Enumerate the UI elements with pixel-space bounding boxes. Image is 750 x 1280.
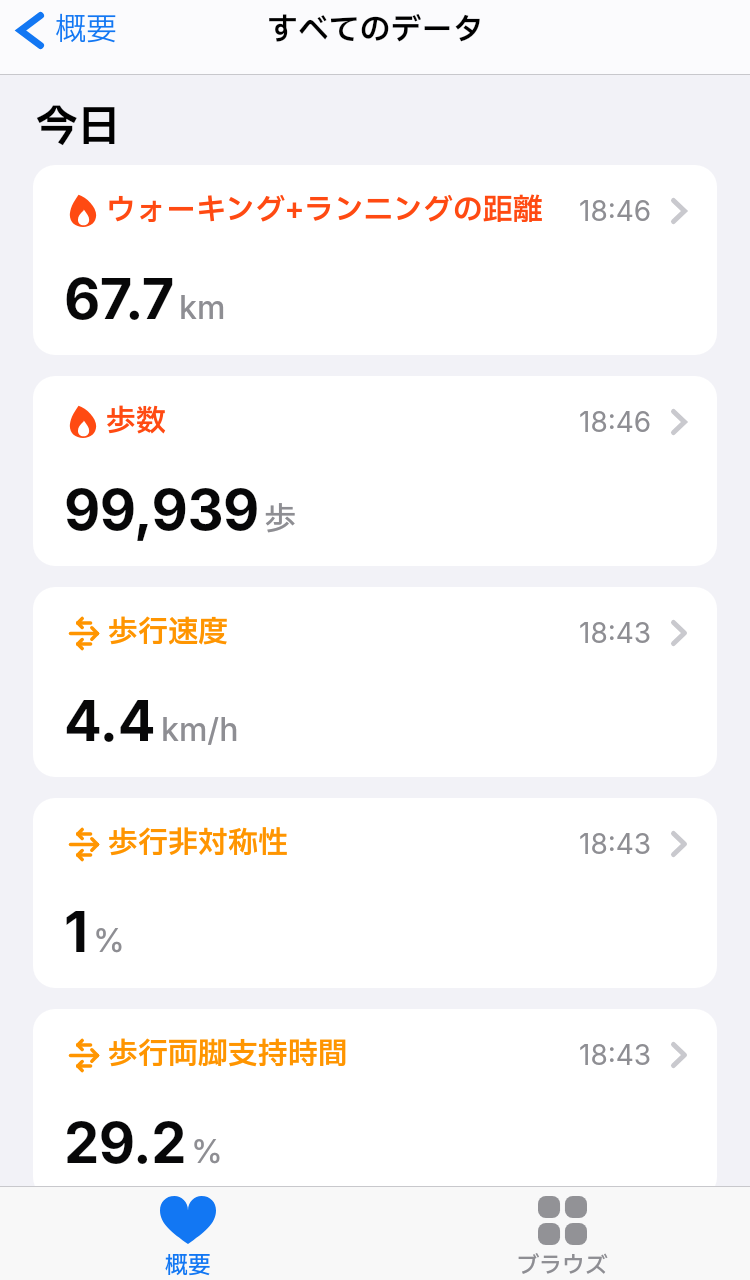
staticText: 今日 (36, 96, 121, 159)
staticText: 18:46 (579, 194, 652, 228)
staticText: 99,939 (64, 476, 259, 544)
staticText: 歩行非対称性 (108, 821, 288, 866)
staticText: ウォーキング+ランニングの距離 (106, 188, 543, 233)
staticText: 概要 (165, 1249, 211, 1280)
staticText: km/h (161, 710, 239, 749)
staticText: 概要 (55, 7, 117, 53)
button[interactable]: ウォーキング+ランニングの距離 (33, 165, 717, 355)
staticText: 18:43 (579, 827, 652, 861)
staticText: 29.2 (64, 1109, 186, 1177)
staticText: km (179, 288, 226, 327)
staticText: 歩行両脚支持時間 (108, 1032, 348, 1077)
button[interactable]: 歩行速度 (33, 587, 717, 777)
staticText: % (93, 921, 125, 960)
staticText: 歩行速度 (108, 610, 228, 655)
button[interactable]: 歩行両脚支持時間 (33, 1009, 717, 1199)
staticText: 4.4 (64, 687, 156, 755)
staticText: 歩数 (106, 399, 166, 444)
button[interactable]: 概要 (17, 7, 117, 53)
staticText: % (191, 1132, 223, 1171)
staticText: 18:43 (579, 1038, 652, 1072)
staticText: 1 (64, 898, 88, 966)
button[interactable]: 歩数 (33, 376, 717, 566)
staticText: 18:46 (579, 405, 652, 439)
staticText: 67.7 (64, 265, 174, 333)
staticText: 18:43 (579, 616, 652, 650)
button[interactable]: 概要 (160, 1196, 216, 1280)
staticText: すべてのデータ (267, 7, 484, 53)
staticText: 歩 (264, 496, 297, 544)
button[interactable]: ブラウズ (516, 1196, 608, 1280)
staticText: ブラウズ (516, 1249, 608, 1280)
button[interactable]: 歩行非対称性 (33, 798, 717, 988)
